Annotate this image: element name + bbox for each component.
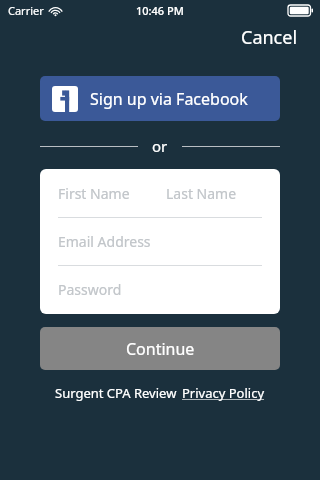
staticText: Surgent CPA Review — [55, 384, 177, 402]
button[interactable]: Sign up via Facebook — [40, 76, 280, 121]
staticText: Email Address — [58, 232, 151, 251]
staticText: Cancel — [241, 25, 298, 49]
other: Wi-Fi signal — [49, 6, 62, 16]
button[interactable]: First Name — [40, 169, 160, 217]
button[interactable]: Last Name — [160, 169, 280, 217]
staticText: Last Name — [166, 184, 237, 203]
staticText: Continue — [126, 338, 195, 360]
staticText: Privacy Policy — [182, 384, 265, 402]
button[interactable]: Privacy Policy — [182, 384, 265, 402]
staticText: Sign up via Facebook — [90, 88, 248, 110]
button[interactable]: Email Address — [40, 218, 280, 265]
button[interactable]: Continue — [40, 327, 280, 370]
staticText: First Name — [58, 184, 130, 203]
button[interactable]: Password — [40, 266, 280, 313]
staticText: Carrier — [8, 3, 44, 18]
staticText: Password — [58, 280, 122, 299]
button[interactable]: Cancel — [219, 20, 320, 54]
staticText: or — [152, 136, 168, 156]
staticText: 10:46 PM — [136, 3, 184, 18]
other: Battery full — [288, 5, 313, 16]
